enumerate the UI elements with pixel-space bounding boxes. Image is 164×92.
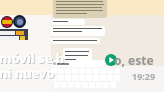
button[interactable]: Play bbox=[105, 54, 117, 66]
button[interactable] bbox=[63, 48, 92, 64]
staticText: móvil se h bbox=[0, 50, 66, 68]
button[interactable] bbox=[51, 19, 85, 25]
staticText: o, este bbox=[114, 52, 154, 68]
staticText: móvil se h bbox=[0, 49, 65, 67]
staticText: ni nuevo bbox=[0, 65, 56, 83]
button[interactable] bbox=[51, 38, 100, 44]
button[interactable] bbox=[53, 0, 107, 18]
button[interactable] bbox=[51, 68, 57, 74]
button[interactable] bbox=[51, 26, 105, 36]
staticText: 19:29 bbox=[132, 70, 156, 82]
button[interactable] bbox=[51, 75, 57, 81]
button[interactable] bbox=[51, 60, 105, 67]
staticText: ni nuevo bbox=[0, 64, 55, 82]
